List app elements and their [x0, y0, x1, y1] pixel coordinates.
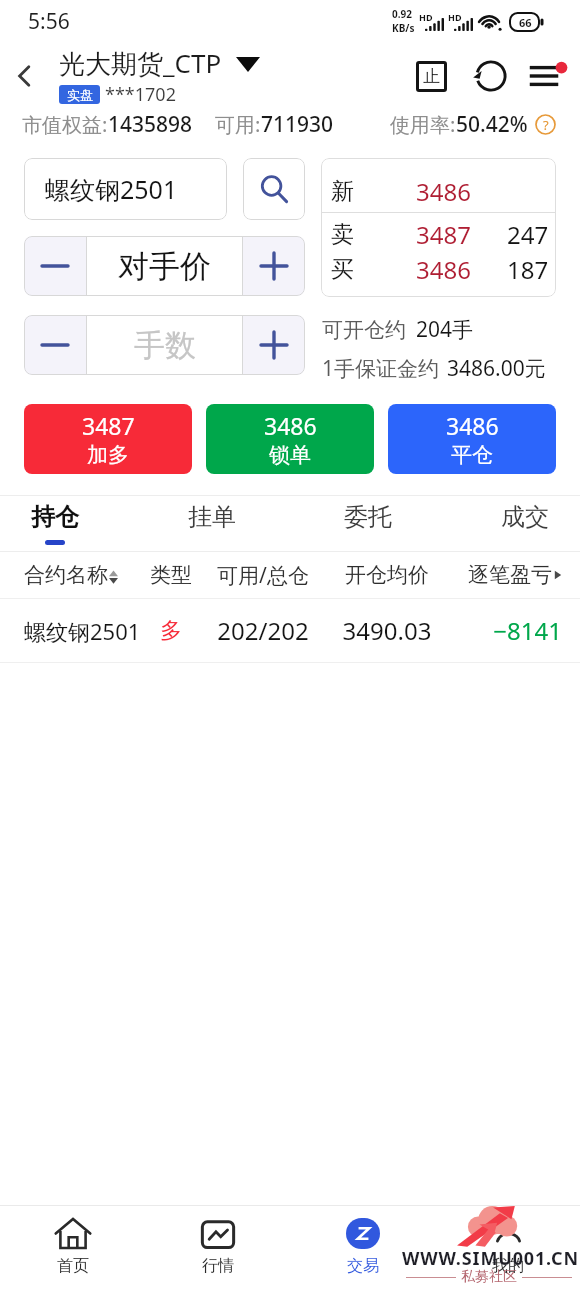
staticText: 3486 — [446, 410, 499, 441]
staticText: −8141 — [440, 614, 562, 647]
staticText: 实盘 — [67, 87, 93, 103]
staticText: 3486.00元 — [447, 354, 546, 383]
staticText: 持仓 — [31, 502, 79, 532]
button[interactable]: 持仓 — [31, 496, 79, 551]
staticText: 卖 — [331, 220, 416, 249]
button[interactable]: Help — [535, 114, 556, 135]
staticText: 首页 — [57, 1256, 89, 1276]
button[interactable]: Stop loss — [407, 52, 455, 100]
staticText: 66 — [519, 15, 532, 30]
staticText: 3487 — [82, 410, 135, 441]
staticText: 247 — [507, 218, 549, 251]
staticText: 挂单 — [188, 502, 236, 532]
staticText: ? — [543, 116, 549, 134]
staticText: 可开仓约 — [322, 317, 406, 343]
staticText: 成交 — [501, 502, 549, 532]
button[interactable]: Back — [0, 52, 48, 100]
staticText: 螺纹钢2501 — [45, 172, 178, 206]
staticText: 行情 — [202, 1256, 234, 1276]
staticText: 逐笔盈亏 — [468, 562, 552, 588]
staticText: 可用/总仓 — [192, 561, 334, 590]
staticText: 光大期货_CTP — [59, 45, 222, 81]
staticText: HD — [419, 11, 433, 23]
staticText: 204手 — [416, 315, 474, 344]
button[interactable]: Increase — [243, 236, 305, 296]
button[interactable]: 成交 — [501, 496, 549, 551]
button[interactable]: 3487 — [24, 404, 192, 474]
staticText: 新 — [331, 177, 416, 206]
staticText: ***1702 — [105, 82, 176, 107]
staticText: 交易 — [347, 1256, 379, 1276]
staticText: 手数 — [134, 326, 196, 365]
staticText: HD — [448, 11, 462, 23]
staticText: 3486 — [264, 410, 317, 441]
staticText: 3487 — [416, 218, 471, 251]
staticText: 1435898 — [108, 110, 193, 139]
button[interactable]: Decrease — [24, 236, 86, 296]
staticText: 止 — [423, 66, 440, 87]
button[interactable]: Refresh — [472, 57, 510, 95]
button[interactable]: 交易 — [290, 1206, 435, 1288]
button[interactable]: 螺纹钢2501 — [24, 158, 227, 220]
staticText: 市值权益: — [22, 111, 108, 138]
button[interactable]: Increase — [243, 315, 305, 375]
button[interactable]: 对手价 — [87, 236, 242, 296]
staticText: 1手保证金约 — [322, 354, 440, 383]
staticText: 3486 — [416, 253, 471, 286]
staticText: 螺纹钢2501 — [24, 616, 150, 646]
button[interactable]: 螺纹钢2501 — [24, 599, 562, 662]
staticText: 50.42% — [456, 110, 528, 139]
staticText: 私募社区 — [461, 1268, 517, 1286]
staticText: 可用: — [215, 111, 261, 138]
staticText: 委托 — [344, 502, 392, 532]
staticText: 买 — [331, 255, 416, 284]
button[interactable]: 我的 — [435, 1206, 580, 1288]
button[interactable]: 3486 — [388, 404, 556, 474]
staticText: 3486 — [416, 175, 471, 208]
staticText: 202/202 — [192, 614, 334, 647]
staticText: WWW.SIMU001.CN — [402, 1246, 580, 1271]
button[interactable]: 手数 — [87, 315, 242, 375]
staticText: 锁单 — [269, 442, 311, 468]
button[interactable]: Search — [243, 158, 305, 220]
button[interactable]: 挂单 — [188, 496, 236, 551]
staticText: 平仓 — [451, 442, 493, 468]
button[interactable]: Decrease — [24, 315, 86, 375]
staticText: 0.92 — [392, 7, 412, 21]
staticText: 使用率: — [390, 111, 456, 138]
button[interactable]: 委托 — [344, 496, 392, 551]
staticText: 5:56 — [28, 7, 70, 36]
staticText: 类型 — [150, 562, 192, 588]
staticText: 开仓均价 — [334, 562, 440, 588]
staticText: 我的 — [492, 1256, 524, 1276]
staticText: KB/s — [392, 21, 415, 35]
button[interactable]: Menu — [525, 53, 571, 99]
staticText: 多 — [150, 617, 192, 645]
staticText: 3490.03 — [334, 614, 440, 647]
staticText: 对手价 — [118, 247, 211, 286]
staticText: 711930 — [261, 110, 334, 139]
button[interactable]: 行情 — [145, 1206, 290, 1288]
button[interactable]: 首页 — [0, 1206, 145, 1288]
staticText: 加多 — [87, 442, 129, 468]
staticText: 合约名称 — [24, 562, 108, 588]
staticText: 187 — [507, 253, 549, 286]
button[interactable]: 3486 — [206, 404, 374, 474]
